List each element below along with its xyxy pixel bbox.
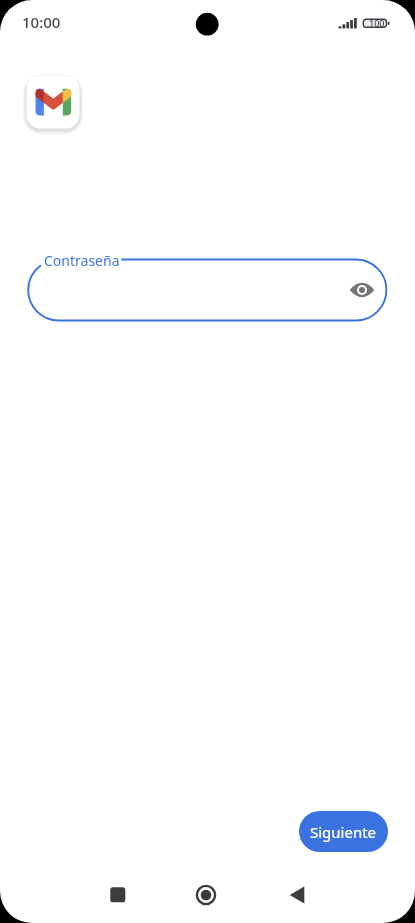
button[interactable]: Siguiente <box>299 811 388 852</box>
button[interactable]: Recents <box>97 874 139 916</box>
staticText: Contraseña <box>44 251 120 270</box>
button[interactable]: Mostrar contraseña <box>347 275 377 305</box>
staticText: 100 <box>369 17 385 29</box>
button[interactable]: Back <box>276 874 318 916</box>
staticText: Siguiente <box>310 822 377 842</box>
staticText: 10:00 <box>22 12 61 32</box>
button[interactable]: Home <box>185 874 227 916</box>
